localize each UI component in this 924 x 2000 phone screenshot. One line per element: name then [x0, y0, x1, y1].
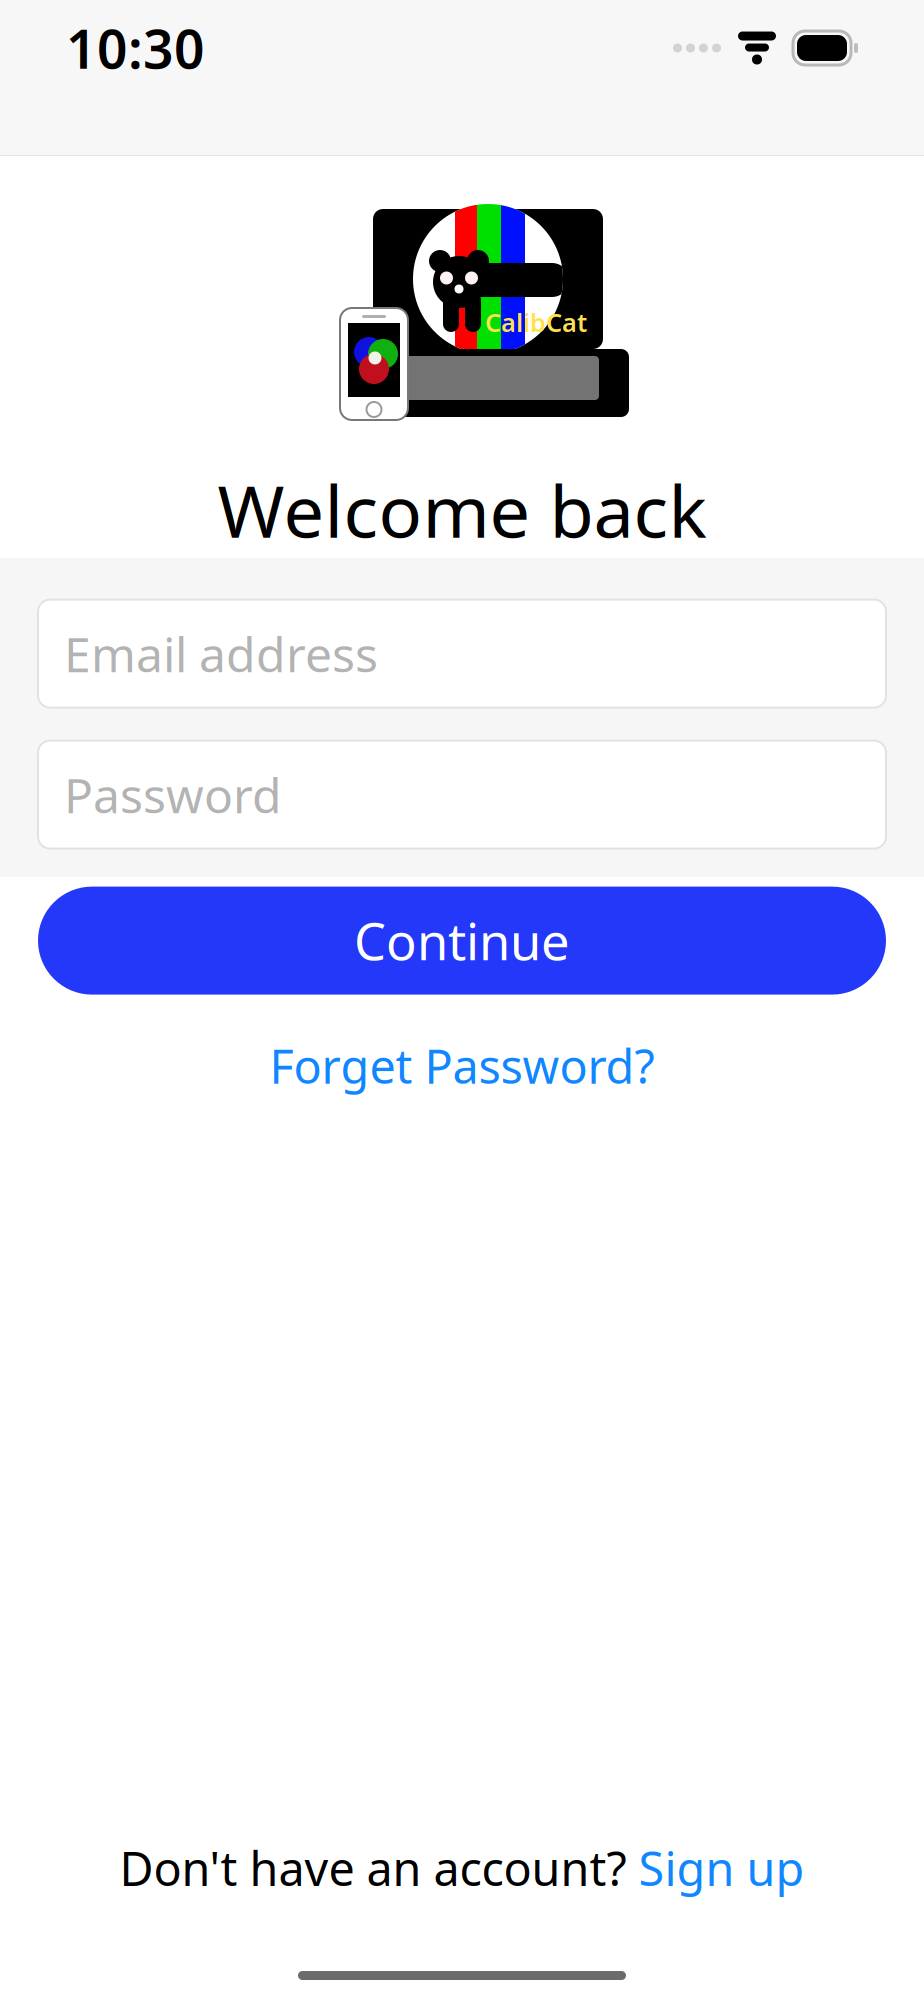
button[interactable]: Forget Password?: [249, 1021, 674, 1111]
staticText: Don't have an account?: [119, 1837, 638, 1899]
staticText: 10:30: [66, 13, 205, 83]
staticText: CalibCat: [485, 305, 587, 339]
staticText: Continue: [354, 907, 570, 974]
staticText: Forget Password?: [269, 1035, 654, 1097]
button[interactable]: Email address: [38, 600, 886, 708]
staticText: Sign up: [638, 1837, 804, 1899]
button[interactable]: Sign up: [638, 1837, 804, 1899]
button[interactable]: Password: [38, 741, 886, 849]
button[interactable]: Continue: [38, 887, 886, 995]
staticText: Welcome back: [217, 462, 706, 558]
staticText: Password: [64, 763, 282, 826]
staticText: Email address: [64, 622, 378, 685]
